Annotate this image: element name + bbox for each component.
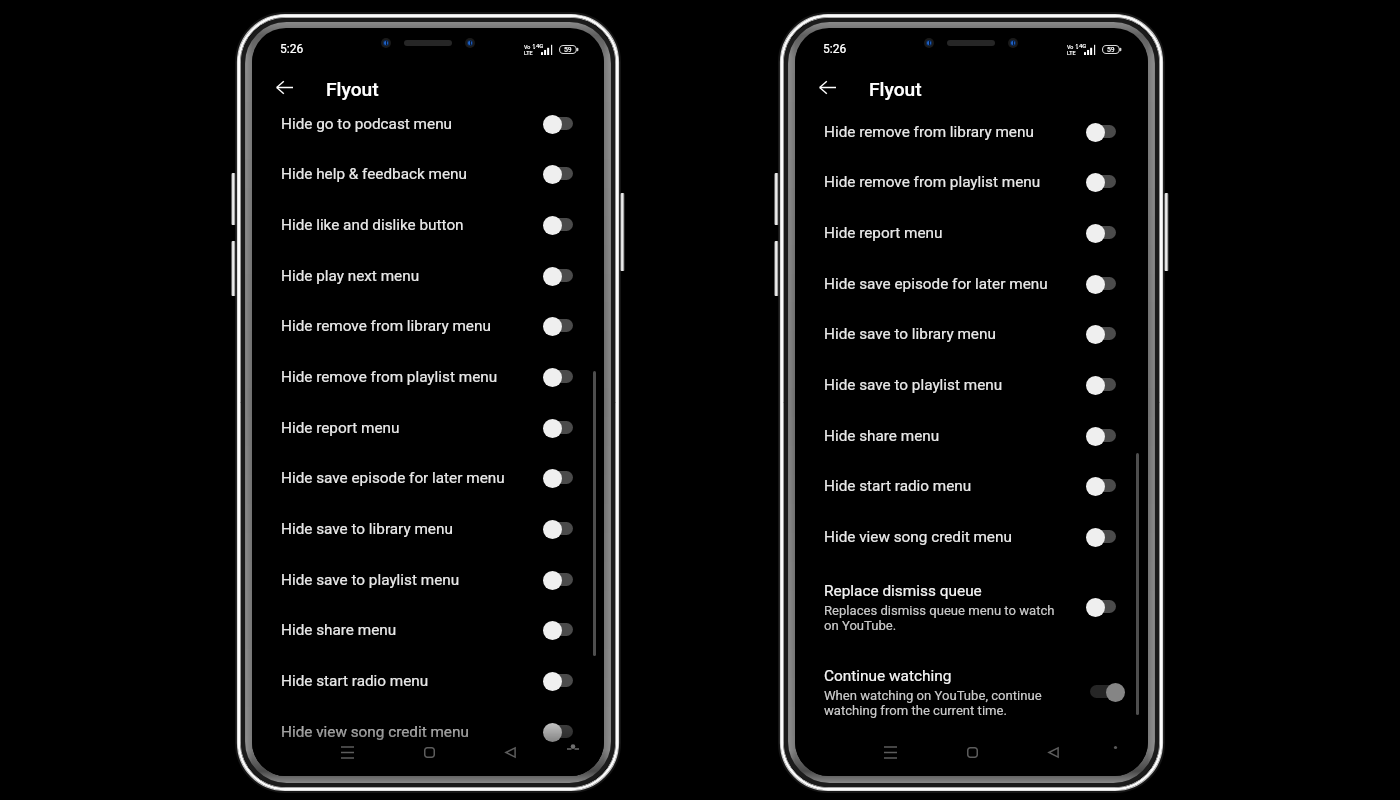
staticText: LTE [1067, 50, 1076, 56]
staticText: Hide share menu [824, 427, 940, 445]
button[interactable]: Switch off [543, 617, 577, 643]
staticText: Flyout [869, 78, 922, 101]
staticText: Hide start radio menu [281, 672, 429, 690]
button[interactable]: Switch off [543, 364, 577, 390]
button[interactable]: Hide view song credit menu [795, 512, 1148, 563]
button[interactable]: Hide like and dislike button [252, 200, 604, 251]
button[interactable]: Hide remove from playlist menu [795, 157, 1148, 208]
staticText: Hide remove from library menu [824, 123, 1034, 141]
button[interactable]: Hide report menu [795, 208, 1148, 259]
button[interactable]: Continue watching [795, 658, 1148, 738]
staticText: Hide start radio menu [824, 477, 972, 495]
button[interactable]: Hide report menu [252, 403, 604, 454]
button[interactable]: Switch off [543, 668, 577, 694]
button[interactable]: Switch off [1086, 372, 1120, 398]
button[interactable]: Switch off [543, 263, 577, 289]
button[interactable]: Hide start radio menu [252, 656, 604, 707]
staticText: Hide remove from library menu [281, 317, 491, 335]
button[interactable]: Switch off [1086, 423, 1120, 449]
staticText: Hide remove from playlist menu [281, 368, 498, 386]
button[interactable]: Navigate up [266, 69, 302, 105]
button[interactable]: Hide save to library menu [252, 504, 604, 555]
button[interactable]: Hide play next menu [252, 251, 604, 302]
button[interactable]: Switch off [543, 719, 577, 745]
staticText: Hide report menu [824, 224, 943, 242]
button[interactable]: Home [955, 735, 989, 769]
staticText: Continue watching [824, 667, 952, 685]
staticText: Vo [1067, 44, 1074, 50]
button[interactable]: Back [493, 735, 527, 769]
button[interactable]: Switch off [1086, 220, 1120, 246]
button[interactable]: Hide start radio menu [795, 461, 1148, 512]
button[interactable]: Hide share menu [252, 605, 604, 656]
staticText: Vo [524, 44, 531, 50]
button[interactable]: Recent apps [330, 735, 364, 769]
button[interactable]: Hide save episode for later menu [252, 453, 604, 504]
button[interactable]: Switch off [543, 111, 577, 137]
button[interactable]: Hide share menu [795, 411, 1148, 462]
button[interactable]: Back [1036, 735, 1070, 769]
button[interactable]: Switch off [543, 567, 577, 593]
button[interactable]: Switch off [1086, 473, 1120, 499]
staticText: Hide go to podcast menu [281, 115, 453, 133]
button[interactable]: Hide save to playlist menu [795, 360, 1148, 411]
button[interactable]: Switch off [1086, 271, 1120, 297]
button[interactable]: Hide save episode for later menu [795, 259, 1148, 310]
staticText: When watching on YouTube, continue watch… [824, 688, 1042, 718]
staticText: Hide save episode for later menu [824, 275, 1048, 293]
staticText: Hide report menu [281, 419, 400, 437]
button[interactable]: Switch off [543, 161, 577, 187]
button[interactable]: Hide remove from library menu [795, 107, 1148, 158]
button[interactable]: Hide help & feedback menu [252, 149, 604, 200]
staticText: Hide view song credit menu [824, 528, 1012, 546]
button[interactable]: Home [412, 735, 446, 769]
staticText: LTE [524, 50, 533, 56]
button[interactable]: Switch on [1086, 679, 1120, 705]
button[interactable]: Switch off [543, 313, 577, 339]
button[interactable]: Switch off [543, 516, 577, 542]
button[interactable]: Hide remove from library menu [252, 301, 604, 352]
button[interactable]: Navigate up [809, 69, 845, 105]
staticText: Hide save to library menu [824, 325, 996, 343]
button[interactable]: Switch off [1086, 321, 1120, 347]
button[interactable]: Hide save to library menu [795, 309, 1148, 360]
staticText: Hide view song credit menu [281, 723, 469, 741]
staticText: Flyout [326, 78, 379, 101]
button[interactable]: Recent apps [873, 735, 907, 769]
staticText: 59 [564, 46, 572, 54]
staticText: 4G [536, 42, 544, 49]
button[interactable]: Switch off [1086, 119, 1120, 145]
staticText: 5:26 [823, 42, 847, 56]
staticText: 5:26 [280, 42, 304, 56]
staticText: Hide help & feedback menu [281, 165, 467, 183]
button[interactable]: Hide save to playlist menu [252, 555, 604, 606]
staticText: Replaces dismiss queue menu to watch on … [824, 603, 1055, 633]
staticText: Hide save to playlist menu [281, 571, 460, 589]
staticText: Hide save to library menu [281, 520, 453, 538]
staticText: Hide play next menu [281, 267, 420, 285]
staticText: Hide save to playlist menu [824, 376, 1003, 394]
button[interactable]: Hide go to podcast menu [252, 99, 604, 150]
button[interactable]: Hide remove from playlist menu [252, 352, 604, 403]
button[interactable]: Switch off [1086, 524, 1120, 550]
staticText: Hide remove from playlist menu [824, 173, 1041, 191]
button[interactable]: Switch off [1086, 169, 1120, 195]
staticText: 59 [1107, 46, 1115, 54]
button[interactable]: Replace dismiss queue [795, 573, 1148, 653]
button[interactable]: Switch off [543, 465, 577, 491]
button[interactable]: Switch off [543, 415, 577, 441]
staticText: 4G [1079, 42, 1087, 49]
staticText: Replace dismiss queue [824, 582, 982, 600]
button[interactable]: Hide view song credit menu [252, 707, 604, 758]
staticText: Hide save episode for later menu [281, 469, 505, 487]
staticText: Hide share menu [281, 621, 397, 639]
button[interactable]: Switch off [543, 212, 577, 238]
button[interactable]: Switch off [1086, 594, 1120, 620]
staticText: Hide like and dislike button [281, 216, 464, 234]
